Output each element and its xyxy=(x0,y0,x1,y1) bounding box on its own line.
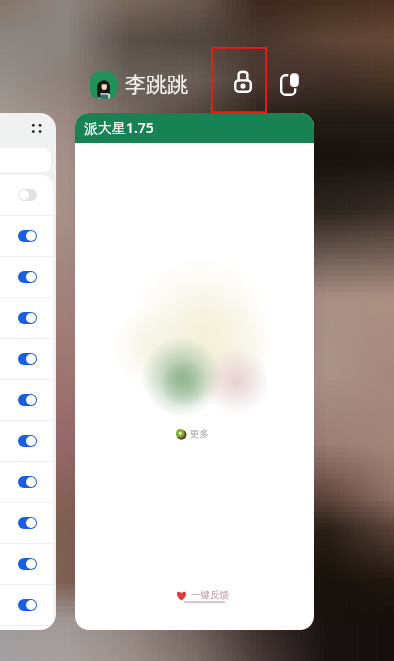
button[interactable]: Enabled xyxy=(18,517,37,529)
button[interactable]: Disabled xyxy=(18,189,37,201)
button[interactable]: Enabled xyxy=(18,599,37,611)
button[interactable]: 一键反馈 xyxy=(176,589,229,601)
button[interactable]: Enabled xyxy=(18,230,37,242)
button[interactable]: Enabled xyxy=(18,271,37,283)
button[interactable]: Enabled xyxy=(18,435,37,447)
staticText: 李跳跳 xyxy=(125,72,188,98)
button[interactable]: 派大星1.75 xyxy=(75,113,314,630)
button[interactable]: Enabled xyxy=(18,353,37,365)
button[interactable]: Split screen xyxy=(270,64,310,104)
button[interactable]: 李跳跳 xyxy=(90,70,188,100)
button[interactable]: Enabled xyxy=(18,312,37,324)
button[interactable]: Enabled xyxy=(18,558,37,570)
button[interactable]: Lock this app xyxy=(211,47,267,113)
staticText: 一键反馈 xyxy=(191,589,229,601)
button[interactable]: 更多 xyxy=(176,428,209,440)
button[interactable]: Enabled xyxy=(18,476,37,488)
staticText: 派大星1.75 xyxy=(84,118,154,137)
button[interactable]: Enabled xyxy=(18,394,37,406)
staticText: 更多 xyxy=(190,428,209,440)
